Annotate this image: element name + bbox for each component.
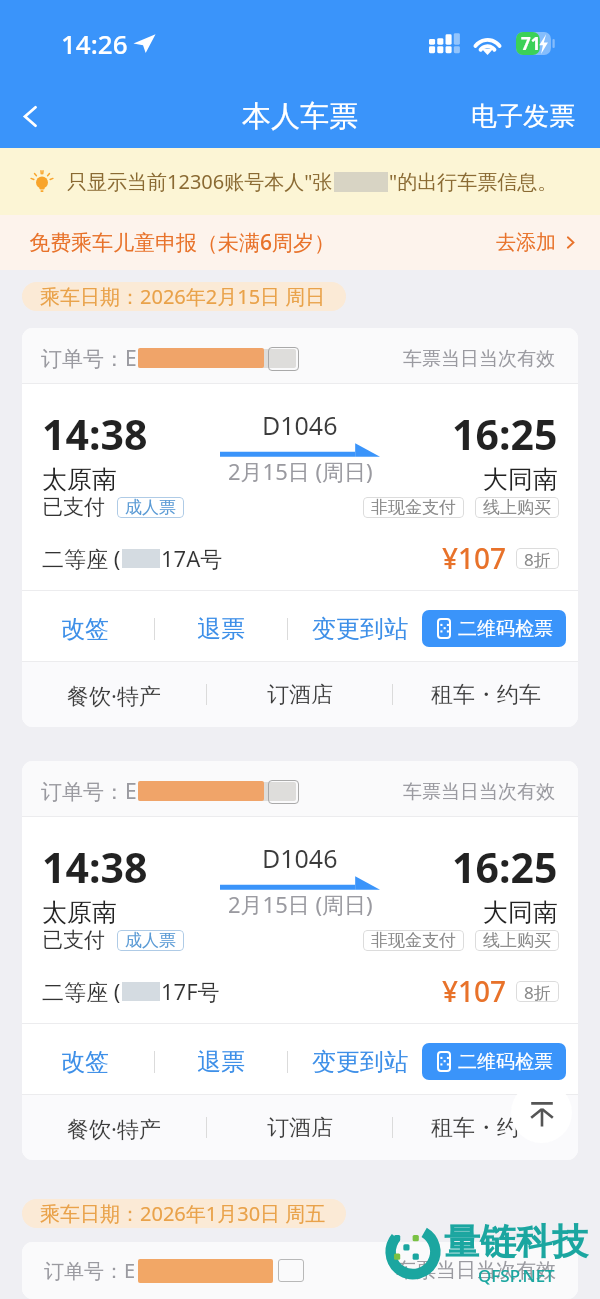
button[interactable]: 租车・约车 — [393, 1095, 578, 1160]
staticText: 14:26 — [61, 26, 128, 61]
staticText: 二等座 ( — [42, 543, 121, 573]
staticText: 订酒店 — [267, 681, 333, 709]
staticText: 8折 — [524, 548, 551, 569]
button[interactable]: Back — [0, 85, 60, 148]
button[interactable]: 订酒店 — [207, 1095, 392, 1160]
button[interactable]: Scroll to top — [511, 1082, 572, 1143]
button[interactable]: 租车・约车 — [393, 662, 578, 727]
button[interactable]: 二维码检票 — [422, 610, 566, 647]
staticText: ¥107 — [442, 972, 507, 1010]
staticText: 订单号：E — [44, 1257, 136, 1284]
button[interactable]: 餐饮·特产 — [22, 1095, 206, 1160]
staticText: 改签 — [61, 614, 109, 644]
staticText: 免费乘车儿童申报（未满6周岁） — [29, 228, 336, 257]
staticText: "的出行车票信息。 — [389, 168, 558, 195]
staticText: 本人车票 — [242, 98, 358, 135]
button[interactable]: 改签 — [53, 605, 117, 653]
staticText: 大同南 — [483, 897, 558, 928]
staticText: 太原南 — [42, 464, 117, 495]
staticText: 非现金支付 — [371, 497, 456, 518]
staticText: D1046 — [262, 841, 338, 875]
staticText: 大同南 — [483, 464, 558, 495]
staticText: 退票 — [197, 1047, 245, 1077]
staticText: 线上购买 — [483, 930, 551, 951]
button[interactable]: 退票 — [189, 1038, 253, 1086]
button[interactable]: 二维码检票 — [422, 1043, 566, 1080]
staticText: 8折 — [524, 981, 551, 1002]
staticText: 变更到站 — [312, 1047, 408, 1077]
staticText: 71 — [521, 32, 541, 55]
staticText: QFSP.NET — [478, 1264, 555, 1287]
button[interactable]: 电子发票 — [449, 85, 600, 148]
staticText: 车票当日当次有效 — [396, 1258, 556, 1283]
staticText: 订单号：E — [41, 777, 137, 806]
staticText: ¥107 — [442, 539, 507, 577]
staticText: 二等座 ( — [42, 976, 121, 1006]
staticText: 2月15日 (周日) — [228, 456, 373, 486]
staticText: 14:38 — [42, 406, 148, 462]
staticText: D1046 — [262, 408, 338, 442]
staticText: 太原南 — [42, 897, 117, 928]
staticText: 非现金支付 — [371, 930, 456, 951]
staticText: 17F号 — [161, 976, 220, 1006]
staticText: 改签 — [61, 1047, 109, 1077]
staticText: 去添加 — [496, 230, 556, 255]
staticText: 车票当日当次有效 — [403, 347, 555, 371]
staticText: 订单号：E — [41, 344, 137, 373]
staticText: 乘车日期：2026年2月15日 周日 — [40, 283, 326, 310]
staticText: 餐饮·特产 — [67, 680, 161, 710]
staticText: 租车・约车 — [431, 1114, 541, 1142]
staticText: 二维码检票 — [458, 1050, 553, 1074]
button[interactable]: 免费乘车儿童申报（未满6周岁） — [0, 215, 600, 270]
button[interactable]: 变更到站 — [304, 605, 416, 653]
button[interactable]: 订酒店 — [207, 662, 392, 727]
staticText: 成人票 — [125, 930, 176, 951]
staticText: 2月15日 (周日) — [228, 889, 373, 919]
staticText: 退票 — [197, 614, 245, 644]
staticText: 乘车日期：2026年1月30日 周五 — [40, 1200, 326, 1227]
staticText: 租车・约车 — [431, 681, 541, 709]
staticText: 订酒店 — [267, 1114, 333, 1142]
staticText: 16:25 — [452, 839, 558, 895]
staticText: 已支付 — [42, 494, 105, 520]
staticText: 成人票 — [125, 497, 176, 518]
button[interactable]: 退票 — [189, 605, 253, 653]
staticText: 电子发票 — [471, 100, 575, 133]
staticText: 二维码检票 — [458, 617, 553, 641]
staticText: 车票当日当次有效 — [403, 780, 555, 804]
button[interactable]: 变更到站 — [304, 1038, 416, 1086]
staticText: 线上购买 — [483, 497, 551, 518]
staticText: 量链科技 — [444, 1219, 588, 1264]
staticText: 只显示当前12306账号本人"张 — [67, 168, 333, 195]
button[interactable]: 改签 — [53, 1038, 117, 1086]
staticText: 已支付 — [42, 927, 105, 953]
staticText: 变更到站 — [312, 614, 408, 644]
staticText: 17A号 — [161, 543, 223, 573]
staticText: 餐饮·特产 — [67, 1113, 161, 1143]
staticText: 14:38 — [42, 839, 148, 895]
button[interactable]: 餐饮·特产 — [22, 662, 206, 727]
staticText: 16:25 — [452, 406, 558, 462]
